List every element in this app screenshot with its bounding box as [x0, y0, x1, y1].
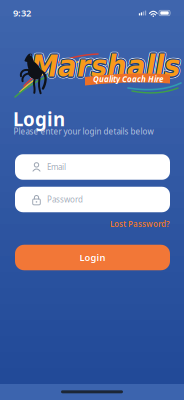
button[interactable]: Login [15, 245, 170, 270]
staticText: Marshalls [32, 49, 181, 85]
staticText: Please enter your login details below [13, 126, 153, 137]
staticText: Marshalls [30, 49, 179, 85]
button[interactable]: Lost Password? [110, 219, 170, 229]
staticText: Marshalls [30, 47, 179, 83]
staticText: Marshalls [31, 47, 180, 83]
button[interactable]: Password [15, 187, 170, 212]
staticText: Login [13, 107, 65, 131]
staticText: Marshalls [31, 48, 180, 84]
staticText: Marshalls [31, 46, 180, 82]
staticText: Marshalls [30, 49, 179, 85]
staticText: Quality Coach Hire [93, 74, 163, 84]
staticText: Marshalls [32, 49, 181, 85]
staticText: Password [47, 194, 83, 205]
staticText: Marshalls [30, 48, 179, 84]
button[interactable]: Email [15, 154, 170, 180]
staticText: Marshalls [31, 49, 180, 85]
staticText: Marshalls [33, 48, 182, 84]
staticText: Lost Password? [110, 219, 170, 229]
staticText: 9:32 [13, 7, 31, 19]
staticText: Marshalls [32, 47, 181, 83]
staticText: Marshalls [32, 47, 181, 83]
staticText: Marshalls [32, 48, 181, 84]
staticText: Email [47, 162, 66, 172]
staticText: Login [79, 251, 105, 264]
staticText: Marshalls [29, 48, 178, 84]
staticText: Marshalls [30, 47, 179, 83]
staticText: Marshalls [31, 50, 180, 86]
